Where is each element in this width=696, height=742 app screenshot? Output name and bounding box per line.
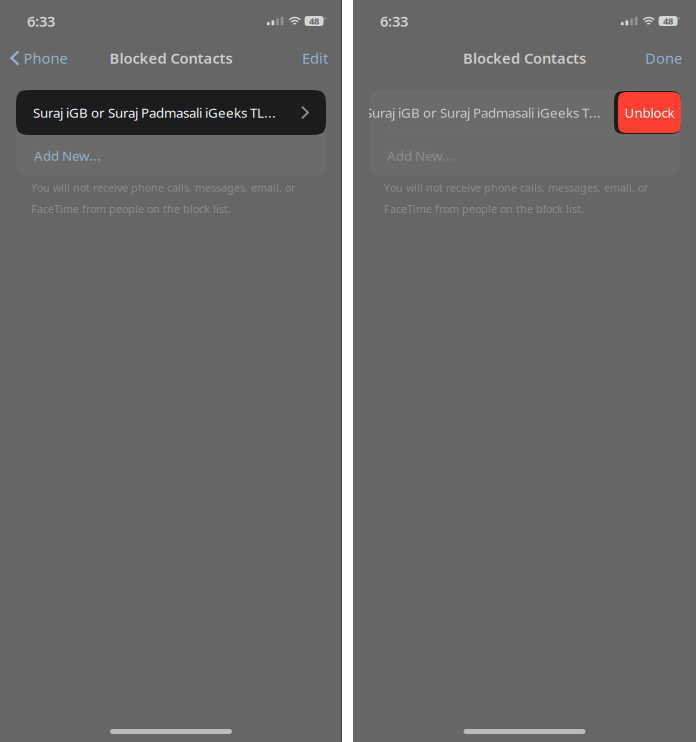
- staticText: Unblock: [624, 104, 674, 121]
- button[interactable]: Add New...: [16, 136, 326, 176]
- staticText: Add New...: [387, 147, 454, 164]
- staticText: You will not receive phone calls, messag…: [384, 181, 648, 195]
- button[interactable]: Suraj iGB or Suraj Padmasali iGeeks TL..…: [16, 90, 326, 135]
- staticText: 48: [309, 15, 319, 27]
- staticText: Phone: [24, 48, 68, 68]
- button[interactable]: Done: [631, 43, 696, 73]
- staticText: 48: [663, 15, 673, 27]
- button[interactable]: Suraj iGB or Suraj Padmasali iGeeks T...: [369, 90, 680, 135]
- staticText: Edit: [302, 48, 328, 68]
- button[interactable]: Phone: [0, 42, 78, 74]
- staticText: FaceTime from people on the block list.: [31, 202, 231, 216]
- staticText: 6:33: [380, 11, 408, 31]
- staticText: You will not receive phone calls, messag…: [31, 181, 295, 195]
- staticText: Blocked Contacts: [109, 48, 232, 68]
- staticText: Suraj iGB or Suraj Padmasali iGeeks T...: [365, 104, 601, 121]
- staticText: 6:33: [27, 11, 55, 31]
- button[interactable]: Add New...: [369, 136, 680, 176]
- staticText: Done: [645, 48, 682, 68]
- staticText: Add New...: [34, 147, 101, 164]
- button[interactable]: Edit: [288, 43, 342, 73]
- staticText: FaceTime from people on the block list.: [384, 202, 584, 216]
- staticText: Blocked Contacts: [463, 48, 586, 68]
- button[interactable]: Unblock: [614, 91, 681, 134]
- staticText: Suraj iGB or Suraj Padmasali iGeeks TL..…: [33, 104, 276, 121]
